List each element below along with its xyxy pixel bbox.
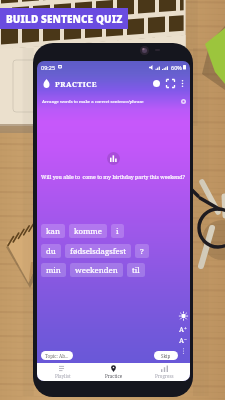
staticText: Skip [161, 353, 171, 359]
staticText: i [116, 226, 119, 237]
staticText: Practice [105, 373, 123, 379]
staticText: du [46, 246, 56, 257]
staticText: 09:25 [41, 64, 56, 71]
staticText: kan [46, 226, 60, 237]
button[interactable]: til [127, 263, 145, 277]
button[interactable]: Record [153, 80, 160, 87]
staticText: 60% [171, 64, 182, 71]
button[interactable]: Increase text size [178, 325, 188, 334]
staticText: Arrange words to make a correct sentence… [42, 98, 144, 104]
button[interactable]: Skip [154, 351, 178, 360]
staticText: BUILD SENTENCE QUIZ [6, 12, 123, 26]
staticText: A⁻ [179, 336, 187, 345]
staticText: komme [74, 226, 102, 237]
staticText: PRACTICE [55, 79, 98, 89]
button[interactable]: komme [69, 224, 107, 238]
button[interactable]: Fullscreen [166, 79, 175, 88]
button[interactable]: More options [180, 79, 185, 88]
button[interactable]: Playlist [37, 363, 88, 381]
staticText: ? [140, 246, 144, 257]
staticText: Will you able to come to my birthday par… [41, 173, 185, 180]
button[interactable]: Settings [181, 99, 186, 104]
button[interactable]: Play audio [107, 152, 120, 165]
button[interactable]: Decrease text size [178, 336, 188, 345]
button[interactable]: weekenden [70, 263, 123, 277]
button[interactable]: kan [41, 224, 65, 238]
staticText: til [132, 265, 140, 276]
staticText: Progress [155, 373, 174, 379]
button[interactable]: More [180, 347, 187, 355]
button[interactable]: du [41, 244, 61, 258]
staticText: Playlist [55, 373, 71, 379]
staticText: weekenden [75, 265, 118, 276]
button[interactable]: min [41, 263, 66, 277]
staticText: A⁺ [179, 325, 187, 334]
staticText: min [46, 265, 61, 276]
button[interactable]: Practice [88, 363, 139, 381]
button[interactable]: fødselsdagsfest [65, 244, 131, 258]
staticText: fødselsdagsfest [70, 246, 126, 257]
button[interactable]: Hint [179, 312, 188, 321]
button[interactable]: Topic: Ab... [41, 351, 73, 360]
button[interactable]: ? [135, 244, 149, 258]
button[interactable]: Progress [139, 363, 190, 381]
button[interactable]: i [111, 224, 124, 238]
staticText: Topic: Ab... [45, 353, 69, 359]
